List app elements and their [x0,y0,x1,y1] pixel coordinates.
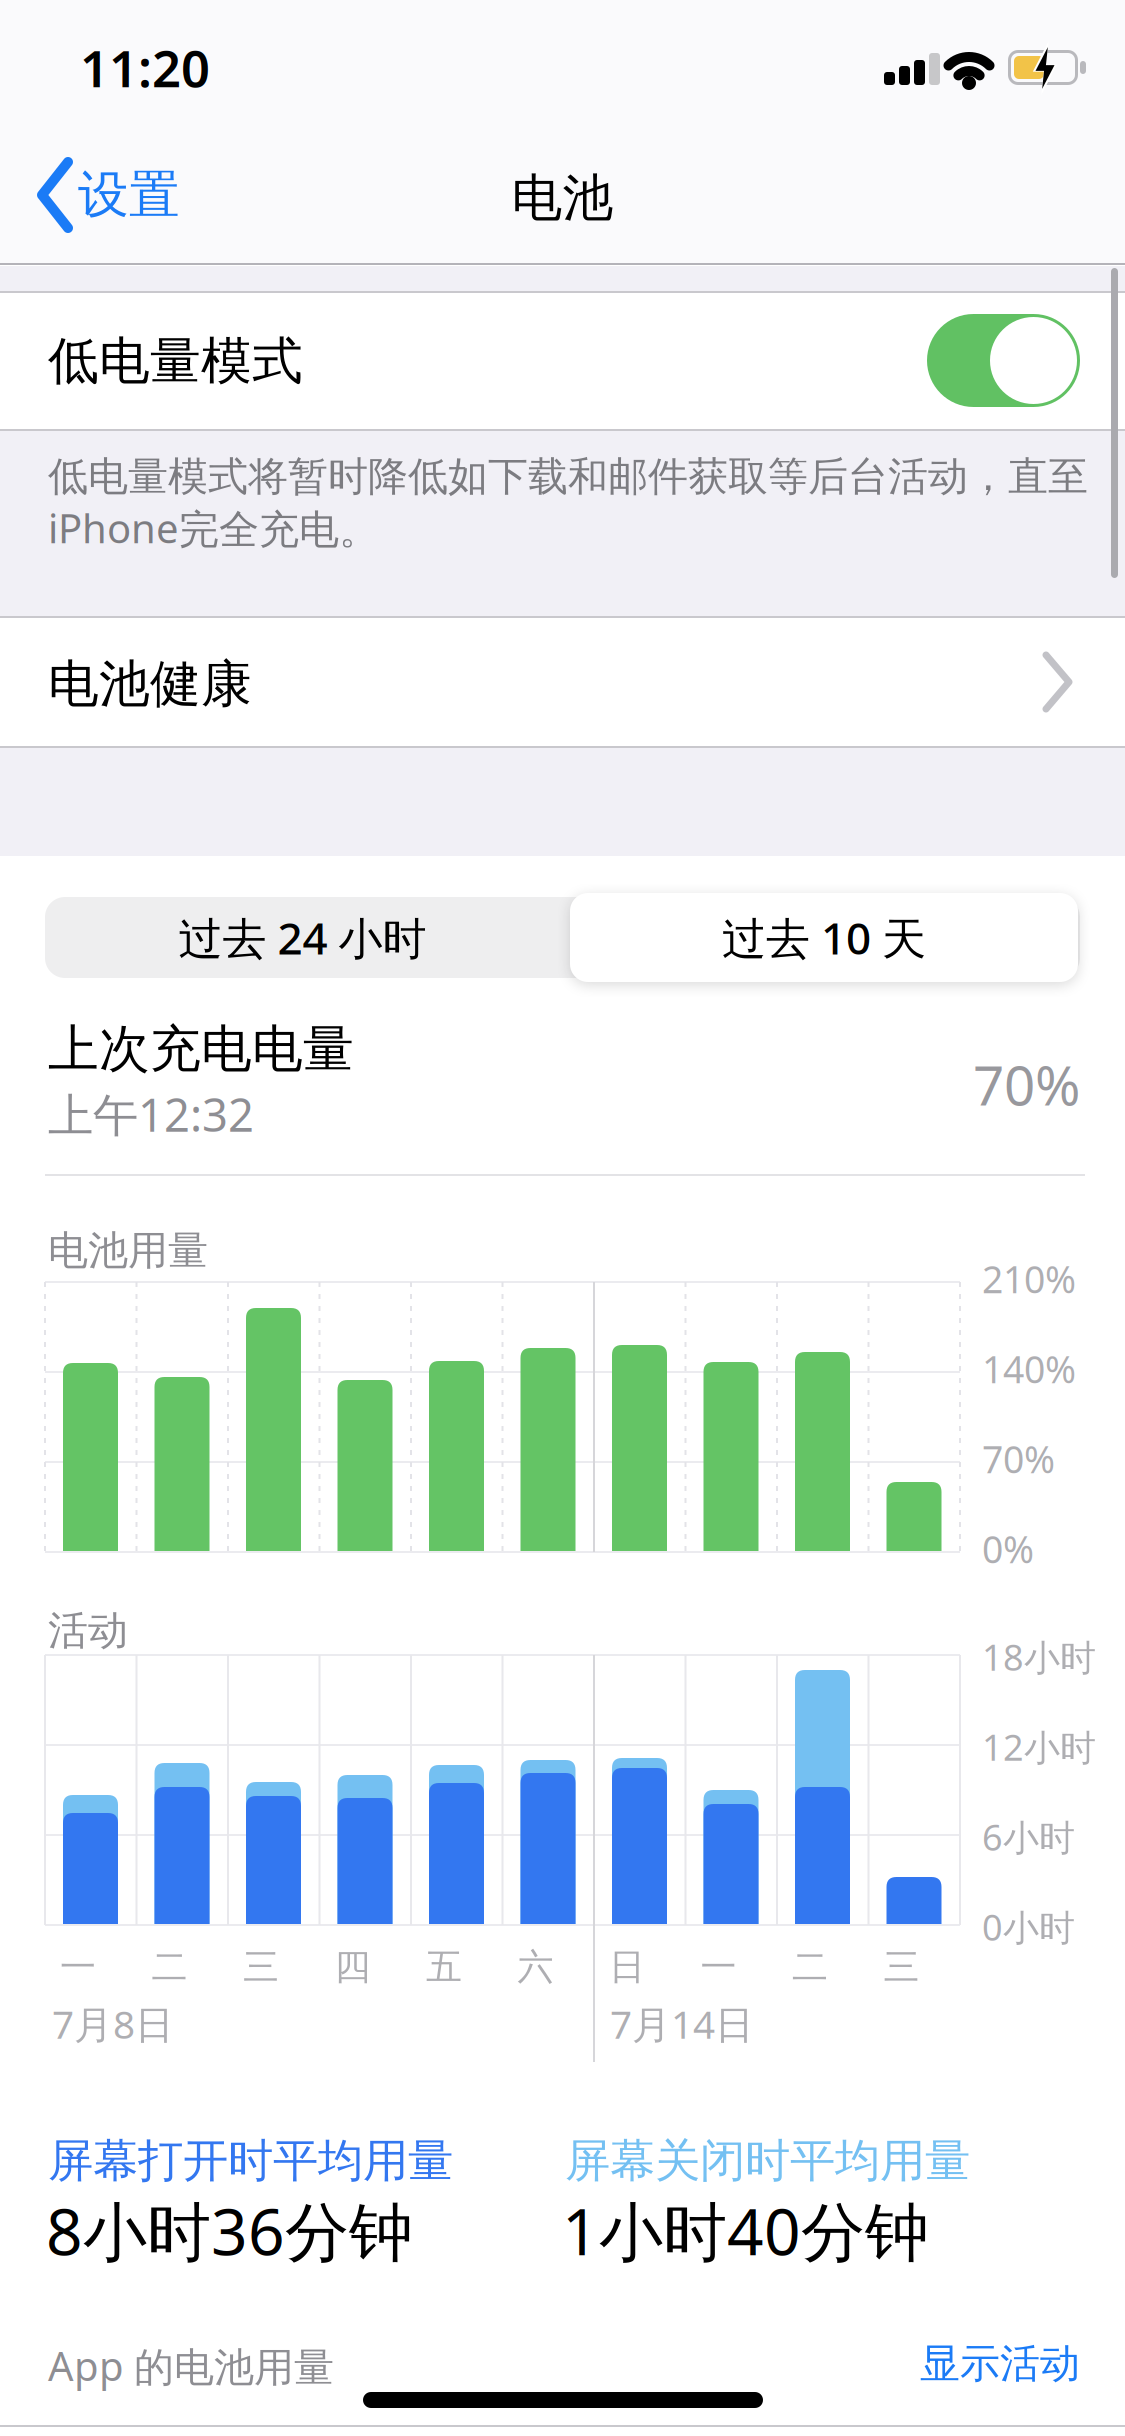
staticText: 210% [982,1254,1076,1304]
staticText: 五 [426,1945,462,1989]
staticText: 0% [982,1524,1034,1574]
staticText: 18小时 [982,1633,1096,1681]
staticText: 四 [334,1945,370,1989]
staticText: 70% [973,1048,1080,1121]
staticText: 上次充电电量 [48,1018,354,1080]
staticText: 电池健康 [48,653,252,715]
staticText: 电池 [511,167,613,229]
staticText: 1小时40分钟 [562,2188,929,2273]
staticText: 屏幕打开时平均用量 [48,2133,453,2189]
staticText: 六 [517,1945,553,1989]
staticText: 低电量模式 [48,330,303,392]
staticText: 11:20 [80,34,210,101]
button[interactable]: 设置 [38,160,180,230]
staticText: 140% [982,1344,1076,1394]
staticText: 日 [609,1945,645,1989]
button[interactable]: 显示活动 [920,2339,1080,2388]
button[interactable]: 电池健康 [0,617,1125,746]
staticText: 二 [792,1945,828,1989]
button[interactable]: 过去 10 天 [570,893,1078,982]
staticText: App 的电池用量 [48,2339,334,2392]
staticText: 6小时 [982,1813,1075,1861]
staticText: 一 [60,1945,96,1989]
staticText: 一 [700,1945,736,1989]
staticText: 电池用量 [48,1226,208,1275]
staticText: 二 [151,1945,187,1989]
staticText: 8小时36分钟 [46,2188,413,2273]
staticText: 显示活动 [920,2339,1080,2388]
staticText: 三 [243,1945,279,1989]
staticText: 70% [982,1434,1055,1484]
staticText: 低电量模式将暂时降低如下载和邮件获取等后台活动，直至 iPhone完全充电。 [48,452,1088,554]
staticText: 过去 24 小时 [178,908,426,967]
staticText: 过去 10 天 [722,908,926,967]
staticText: 0小时 [982,1903,1075,1951]
staticText: 三 [883,1945,919,1989]
staticText: 活动 [48,1606,128,1655]
staticText: 屏幕关闭时平均用量 [565,2133,970,2189]
staticText: 12小时 [982,1723,1096,1771]
staticText: 7月14日 [610,1998,754,2049]
staticText: 7月8日 [52,1998,174,2049]
staticText: 上午12:32 [48,1084,254,1144]
button[interactable]: 过去 24 小时 [45,897,560,978]
button[interactable]: 低电量模式 [0,292,1125,429]
staticText: 设置 [78,164,180,226]
